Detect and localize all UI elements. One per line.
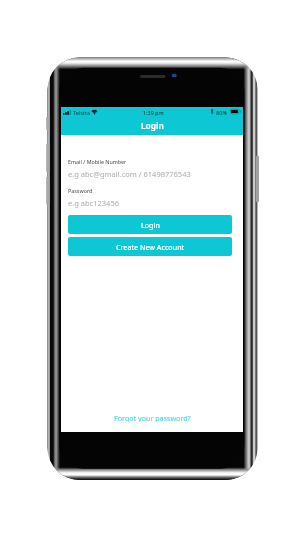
staticText: Telstra: [73, 109, 91, 116]
staticText: 1:39 pm: [143, 109, 164, 116]
staticText: Create New Account: [116, 242, 185, 252]
staticText: Login: [141, 220, 160, 230]
staticText: Email / Mobile Number: [68, 158, 127, 165]
staticText: Password: [68, 187, 93, 194]
staticText: e.g abc@gmail.com / 61498776543: [68, 169, 191, 179]
staticText: e.g abc123456: [68, 198, 119, 208]
button[interactable]: Forgot your password?: [114, 413, 191, 422]
staticText: 80%: [216, 109, 228, 117]
button[interactable]: Create New Account: [68, 237, 232, 256]
button[interactable]: Login: [68, 215, 232, 234]
staticText: Login: [141, 120, 164, 131]
